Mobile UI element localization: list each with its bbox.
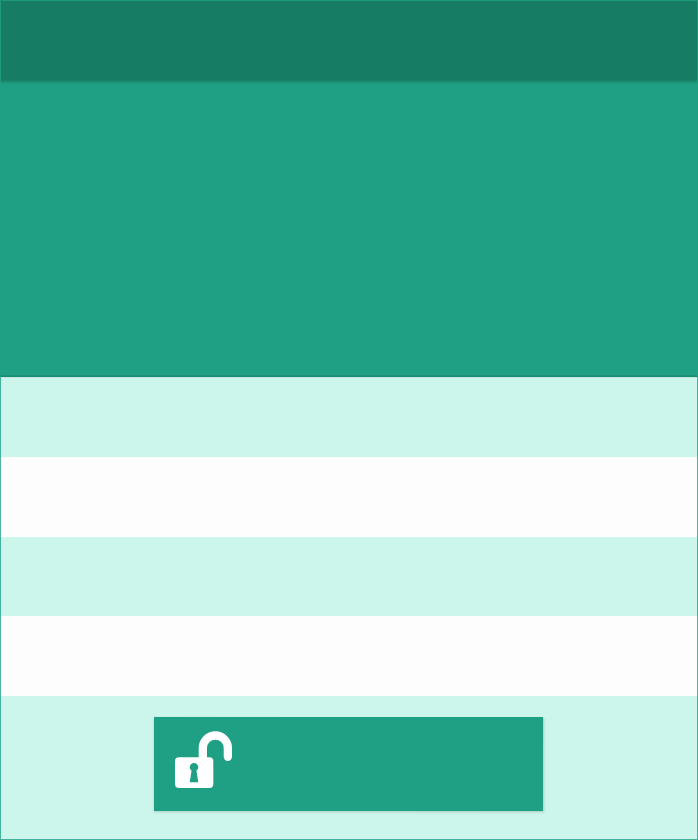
- button[interactable]: Item 4: [0, 616, 698, 696]
- button[interactable]: Item 1: [0, 377, 698, 457]
- button[interactable]: Item 3: [0, 537, 698, 616]
- button[interactable]: Unlock: [154, 717, 543, 811]
- button[interactable]: Item 2: [0, 457, 698, 537]
